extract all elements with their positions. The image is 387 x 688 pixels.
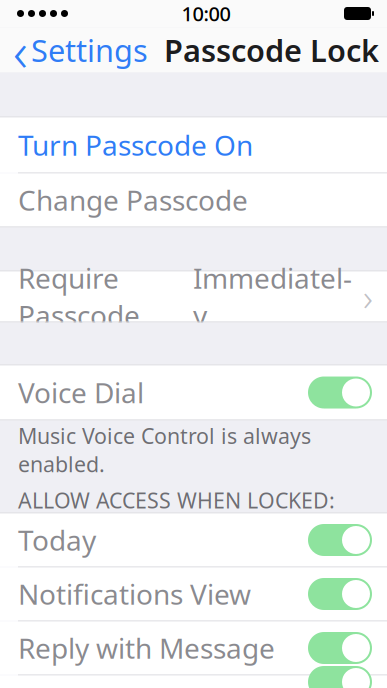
button[interactable]: Turn Passcode On (0, 117, 387, 172)
staticText: Settings (31, 30, 148, 70)
button[interactable]: ‹ (0, 13, 154, 87)
button[interactable]: Today (308, 524, 372, 556)
staticText: Passcode Lock (164, 30, 379, 70)
button[interactable]: Require Passcode (0, 271, 387, 321)
button[interactable]: Voice Dial (308, 376, 372, 408)
staticText: Immediately (193, 259, 352, 334)
button[interactable]: Notifications View (308, 578, 372, 610)
staticText: 10:00 (181, 0, 230, 27)
staticText: Voice Dial (18, 374, 144, 411)
staticText: Today (18, 521, 96, 559)
button[interactable]: Change Passcode (0, 173, 387, 226)
staticText: Reply with Message (18, 629, 275, 667)
staticText: Music Voice Control is always enabled. (18, 421, 311, 478)
button[interactable]: Reply with Message (308, 632, 372, 664)
staticText: Turn Passcode On (18, 126, 253, 164)
staticText: Change Passcode (18, 181, 248, 219)
staticText: ‹ (13, 13, 28, 87)
staticText: Require Passcode (18, 259, 140, 334)
staticText: Notifications View (18, 575, 251, 613)
staticText: ALLOW ACCESS WHEN LOCKED: (18, 486, 335, 514)
button[interactable]: Toggle (308, 666, 372, 688)
staticText: › (363, 272, 373, 321)
